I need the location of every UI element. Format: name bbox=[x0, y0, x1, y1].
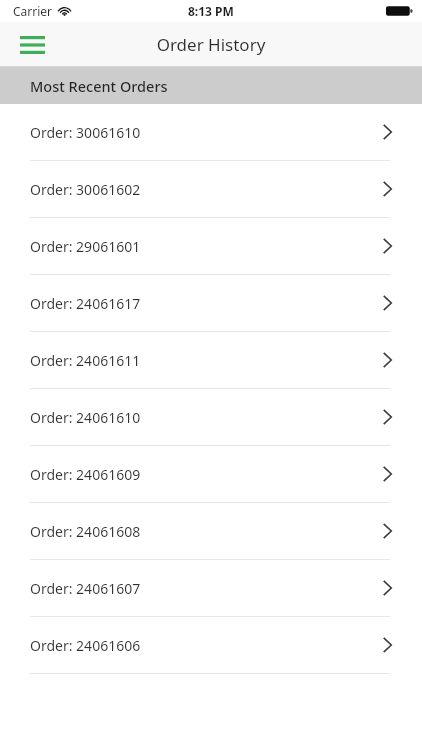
staticText: Order: 24061617 bbox=[30, 294, 141, 313]
staticText: Order: 30061602 bbox=[30, 180, 141, 199]
staticText: Order History bbox=[0, 33, 422, 56]
button[interactable]: Order: 29061601 bbox=[0, 218, 422, 275]
staticText: Order: 24061611 bbox=[30, 351, 141, 370]
button[interactable]: Order: 24061611 bbox=[0, 332, 422, 389]
button[interactable]: Order: 24061617 bbox=[0, 275, 422, 332]
button[interactable]: Order: 30061610 bbox=[0, 104, 422, 161]
button[interactable]: Menu bbox=[10, 23, 54, 67]
staticText: Order: 30061610 bbox=[30, 123, 141, 142]
button[interactable]: Order: 24061606 bbox=[0, 617, 422, 674]
button[interactable]: Order: 24061608 bbox=[0, 503, 422, 560]
staticText: Carrier bbox=[13, 3, 53, 19]
staticText: Most Recent Orders bbox=[30, 76, 168, 96]
button[interactable]: Order: 24061610 bbox=[0, 389, 422, 446]
staticText: Order: 24061608 bbox=[30, 522, 141, 541]
button[interactable]: Order: 24061609 bbox=[0, 446, 422, 503]
staticText: Order: 24061606 bbox=[30, 636, 141, 655]
button[interactable]: Order: 30061602 bbox=[0, 161, 422, 218]
staticText: Order: 24061607 bbox=[30, 579, 141, 598]
staticText: 8:13 PM bbox=[188, 3, 234, 19]
button[interactable]: Order: 24061607 bbox=[0, 560, 422, 617]
staticText: Order: 24061610 bbox=[30, 408, 141, 427]
staticText: Order: 29061601 bbox=[30, 237, 141, 256]
staticText: Order: 24061609 bbox=[30, 465, 141, 484]
